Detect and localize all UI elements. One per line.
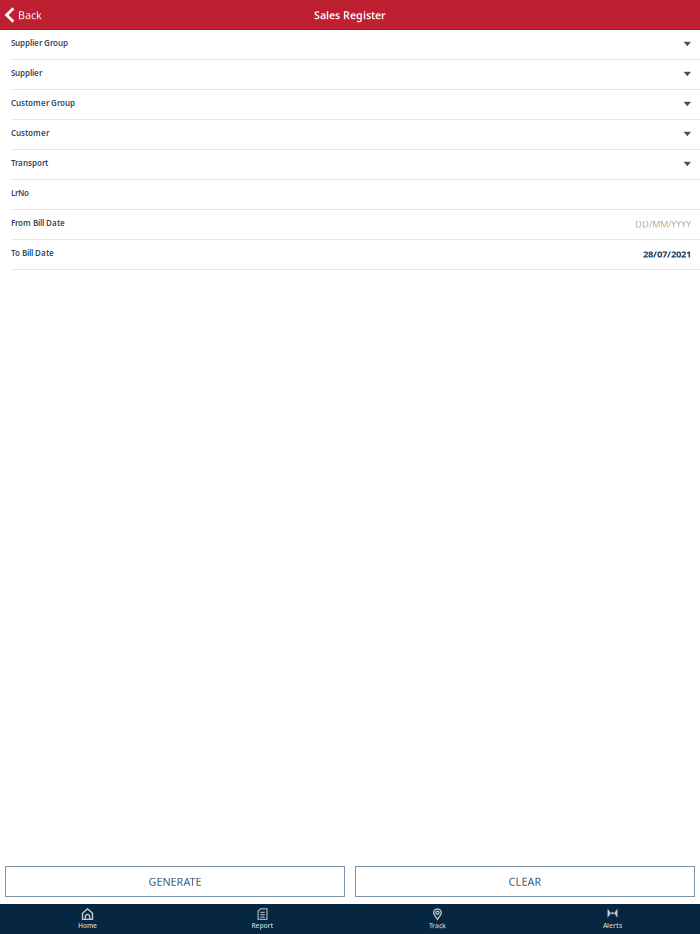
staticText: Sales Register — [314, 8, 386, 22]
button[interactable]: Transport — [0, 150, 700, 180]
staticText: 28/07/2021 — [643, 248, 691, 260]
button[interactable]: GENERATE — [5, 866, 345, 897]
staticText: CLEAR — [508, 874, 541, 889]
button[interactable]: CLEAR — [355, 866, 695, 897]
staticText: Customer — [11, 128, 49, 138]
staticText: LrNo — [11, 188, 29, 198]
staticText: Customer Group — [11, 98, 75, 108]
staticText: Back — [18, 8, 42, 22]
staticText: GENERATE — [148, 874, 201, 889]
button[interactable]: Customer Group — [0, 90, 700, 120]
button[interactable]: From Bill Date — [0, 210, 700, 240]
staticText: To Bill Date — [11, 248, 54, 258]
staticText: Report — [251, 921, 273, 930]
button[interactable]: Customer — [0, 120, 700, 150]
button[interactable]: Back — [0, 2, 48, 28]
staticText: Home — [78, 921, 97, 930]
staticText: DD/MM/YYYY — [635, 218, 691, 230]
button[interactable]: To Bill Date — [0, 240, 700, 270]
staticText: Supplier — [11, 68, 42, 78]
staticText: Alerts — [603, 921, 622, 930]
button[interactable]: Report — [175, 906, 350, 932]
button[interactable]: Supplier — [0, 60, 700, 90]
staticText: Transport — [11, 158, 48, 168]
staticText: Track — [429, 921, 446, 930]
staticText: From Bill Date — [11, 218, 65, 228]
button[interactable]: Supplier Group — [0, 30, 700, 60]
staticText: Supplier Group — [11, 38, 68, 48]
button[interactable]: Home — [0, 906, 175, 932]
button[interactable]: Alerts — [525, 906, 700, 932]
button[interactable]: Track — [350, 906, 525, 932]
button[interactable]: LrNo — [0, 180, 700, 210]
